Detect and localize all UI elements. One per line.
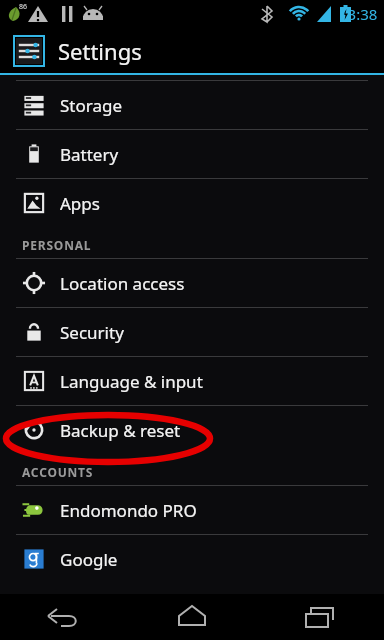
button[interactable]: Battery xyxy=(0,130,384,178)
staticText: Battery xyxy=(60,143,119,166)
button[interactable]: Endomondo PRO xyxy=(0,486,384,534)
button[interactable]: Home xyxy=(128,594,256,640)
staticText: ACCOUNTS xyxy=(22,464,94,480)
button[interactable]: Google xyxy=(0,535,384,583)
button[interactable]: Apps xyxy=(0,179,384,227)
staticText: Endomondo PRO xyxy=(60,499,197,522)
staticText: Backup & reset xyxy=(60,419,181,442)
staticText: Language & input xyxy=(60,370,203,393)
button[interactable]: Recent apps xyxy=(256,594,384,640)
button[interactable]: Backup & reset xyxy=(0,406,384,454)
staticText: Google xyxy=(60,548,118,571)
staticText: Apps xyxy=(60,192,100,215)
button[interactable]: Back xyxy=(0,594,128,640)
staticText: Security xyxy=(60,321,124,344)
staticText: Settings xyxy=(58,36,142,66)
button[interactable]: Security xyxy=(0,308,384,356)
button[interactable]: Language & input xyxy=(0,357,384,405)
staticText: 86 xyxy=(19,2,28,12)
staticText: Location access xyxy=(60,272,185,295)
staticText: PERSONAL xyxy=(22,237,92,253)
button[interactable]: Location access xyxy=(0,259,384,307)
staticText: Storage xyxy=(60,94,123,117)
button[interactable]: Storage xyxy=(0,81,384,129)
staticText: 13:38 xyxy=(339,4,378,24)
